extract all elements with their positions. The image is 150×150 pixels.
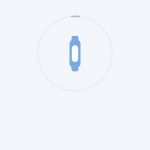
button[interactable]: Searching for device	[38, 16, 112, 91]
